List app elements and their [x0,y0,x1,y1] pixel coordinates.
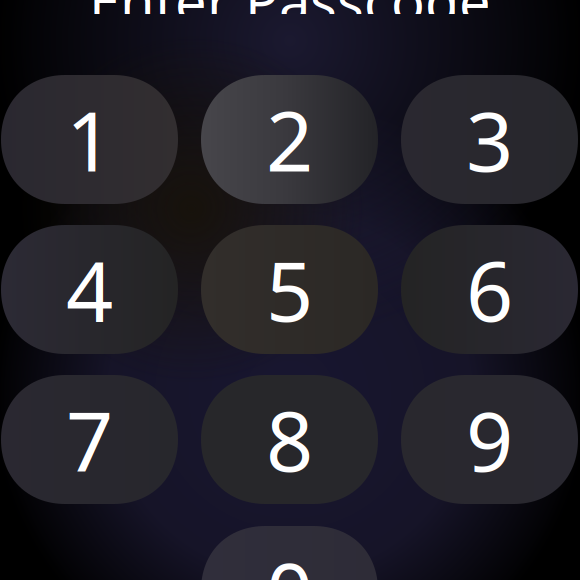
staticText: 6 [466,235,513,344]
staticText: 2 [266,85,313,194]
button[interactable]: 8 [201,375,378,504]
staticText: 4 [66,235,113,344]
button[interactable]: 7 [1,375,178,504]
button[interactable]: 0 [201,526,378,580]
button[interactable]: 9 [401,375,578,504]
staticText: 3 [466,85,513,194]
staticText: 0 [266,536,313,580]
button[interactable]: 3 [401,75,578,204]
button[interactable]: 2 [201,75,378,204]
staticText: 8 [266,385,313,494]
staticText: 1 [66,85,113,194]
staticText: 7 [66,385,113,494]
button[interactable]: 6 [401,225,578,354]
staticText: Enter Passcode [89,0,491,37]
staticText: 5 [266,235,313,344]
button[interactable]: 1 [1,75,178,204]
staticText: 9 [466,385,513,494]
button[interactable]: 5 [201,225,378,354]
button[interactable]: 4 [1,225,178,354]
